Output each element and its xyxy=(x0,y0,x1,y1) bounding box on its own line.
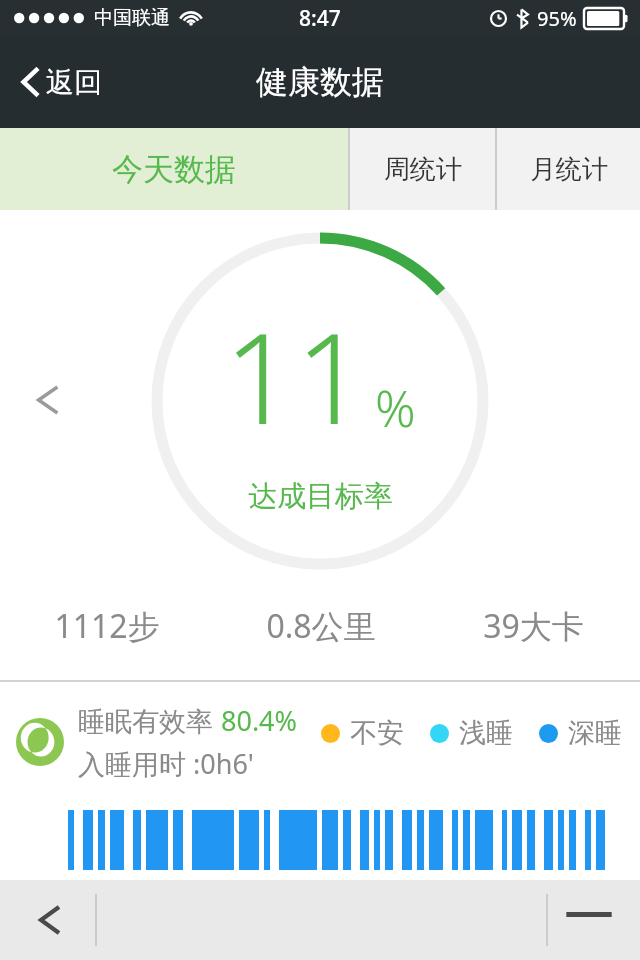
button[interactable]: 月统计 xyxy=(497,128,640,210)
staticText: 95% xyxy=(537,5,577,32)
staticText: 达成目标率 xyxy=(248,478,393,515)
staticText: 健康数据 xyxy=(256,62,384,102)
staticText: 80.4% xyxy=(221,702,298,739)
staticText: 39大卡 xyxy=(483,604,584,648)
button[interactable]: Menu xyxy=(562,895,616,945)
staticText: 周统计 xyxy=(384,153,462,186)
staticText: 返回 xyxy=(46,65,102,100)
button[interactable]: 返回 xyxy=(10,56,112,108)
staticText: 入睡用时 :0h6' xyxy=(78,745,254,782)
staticText: 0.8公里 xyxy=(266,604,376,648)
button[interactable]: Previous day xyxy=(22,374,74,426)
staticText: 月统计 xyxy=(530,153,608,186)
staticText: % xyxy=(375,374,416,442)
button[interactable]: 周统计 xyxy=(350,128,495,210)
button[interactable]: 今天数据 xyxy=(0,128,348,210)
staticText: 浅睡 xyxy=(459,716,513,750)
staticText: 不安 xyxy=(350,716,404,750)
staticText: 11 xyxy=(224,290,367,460)
staticText: 中国联通 xyxy=(94,6,170,30)
staticText: 深睡 xyxy=(568,716,622,750)
staticText: 8:47 xyxy=(299,4,341,33)
button[interactable]: Back xyxy=(26,895,76,945)
staticText: 今天数据 xyxy=(112,150,236,189)
staticText: 1112步 xyxy=(54,604,160,648)
staticText: 睡眠有效率 xyxy=(78,702,221,739)
